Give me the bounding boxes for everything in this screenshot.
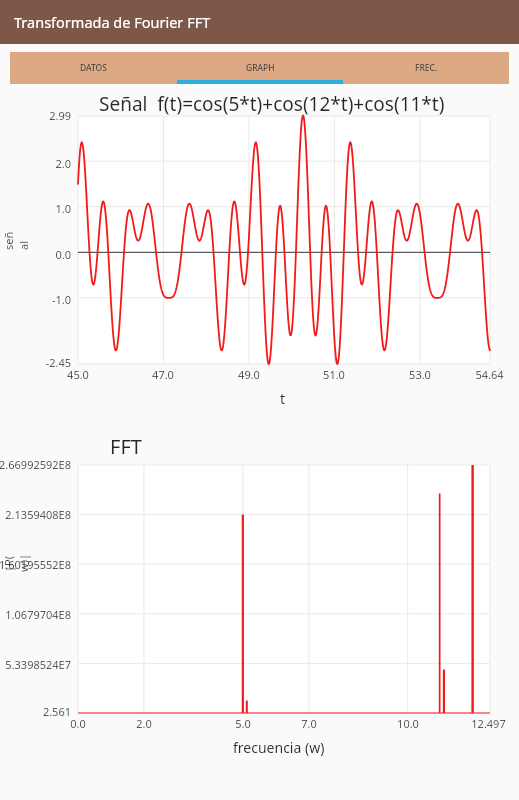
staticText: FFT [110, 433, 142, 460]
button[interactable]: DATOS [10, 52, 177, 84]
staticText: 53.0 [409, 367, 431, 382]
staticText: 5.3398524E7 [5, 657, 71, 672]
staticText: t [280, 389, 286, 408]
staticText: 2.0 [55, 156, 71, 171]
staticText: Señal f(t)=cos(5*t)+cos(12*t)+cos(11*t) [99, 91, 445, 117]
staticText: 45.0 [67, 367, 89, 382]
staticText: 54.64 [475, 367, 504, 382]
staticText: |P(w)| [1, 552, 31, 572]
staticText: GRAPH [246, 62, 275, 74]
staticText: 2.1359408E8 [5, 507, 71, 522]
staticText: 2.561 [42, 704, 71, 719]
staticText: frecuencia (w) [233, 738, 325, 757]
staticText: 5.0 [235, 716, 251, 731]
staticText: -1.0 [51, 292, 71, 307]
staticText: 2.0 [136, 716, 152, 731]
staticText: 1.60195552E8 [0, 557, 71, 572]
staticText: 51.0 [323, 367, 345, 382]
staticText: FREC. [415, 62, 438, 74]
staticText: 1.0 [55, 201, 71, 216]
staticText: DATOS [80, 62, 107, 74]
staticText: 1.0679704E8 [5, 607, 71, 622]
staticText: 7.0 [301, 716, 317, 731]
button[interactable]: GRAPH [177, 52, 343, 84]
staticText: 0.0 [70, 716, 86, 731]
staticText: 2.99 [49, 108, 71, 123]
staticText: 49.0 [238, 367, 260, 382]
button[interactable]: FREC. [343, 52, 509, 84]
staticText: señal [1, 230, 31, 250]
staticText: 47.0 [152, 367, 174, 382]
staticText: 0.0 [55, 247, 71, 262]
staticText: Transformada de Fourier FFT [14, 12, 211, 32]
staticText: 12.497 [471, 716, 506, 731]
staticText: -2.45 [45, 355, 71, 370]
staticText: 10.0 [397, 716, 419, 731]
staticText: 2.66992592E8 [0, 457, 71, 472]
